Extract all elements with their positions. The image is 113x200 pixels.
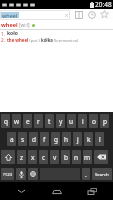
button[interactable]: h (62, 132, 71, 146)
button[interactable]: r (34, 114, 43, 128)
staticText: . (85, 170, 87, 179)
button[interactable]: g (51, 132, 60, 146)
button[interactable]: Search (92, 168, 112, 180)
staticText: v (53, 153, 57, 162)
button[interactable]: ?123 (1, 168, 14, 180)
staticText: d (32, 135, 36, 144)
button[interactable]: s (18, 132, 27, 146)
staticText: q (4, 117, 8, 126)
button[interactable]: Backspace (94, 150, 108, 164)
button[interactable]: Home (42, 182, 72, 200)
button[interactable]: n (72, 150, 81, 164)
staticText: a (10, 135, 14, 144)
button[interactable]: Dictionaries (72, 9, 85, 20)
staticText: u (69, 117, 74, 126)
button[interactable]: v (50, 150, 59, 164)
button[interactable]: Emoji (28, 168, 38, 180)
button[interactable]: i (78, 114, 87, 128)
staticText: h (64, 135, 69, 144)
staticText: [wi:l] (19, 22, 30, 29)
button[interactable]: b (61, 150, 70, 164)
staticText: x (31, 153, 35, 162)
staticText: w (14, 117, 20, 126)
button[interactable]: l (95, 132, 104, 146)
button[interactable]: 2. (0, 37, 113, 43)
staticText: j (77, 135, 79, 144)
button[interactable]: u (67, 114, 76, 128)
staticText: c (42, 153, 46, 162)
staticText: f (43, 135, 46, 144)
button[interactable]: Shift (1, 150, 15, 164)
staticText: i (82, 117, 84, 126)
staticText: 20:48 (95, 0, 112, 9)
button[interactable]: . (82, 168, 90, 180)
staticText: Search (95, 171, 109, 177)
staticText: e (26, 117, 30, 126)
button[interactable]: t (45, 114, 54, 128)
button[interactable]: wheel (0, 10, 70, 20)
button[interactable]: q (1, 114, 10, 128)
button[interactable]: Voice input (16, 168, 26, 180)
staticText: n (74, 153, 79, 162)
button[interactable]: wheel (0, 21, 113, 29)
button[interactable]: k (84, 132, 93, 146)
staticText: l (99, 135, 101, 144)
button[interactable]: x (28, 150, 37, 164)
button[interactable]: d (29, 132, 38, 146)
staticText: ?123 (3, 171, 13, 177)
button[interactable]: History (85, 9, 98, 20)
staticText: wheel (1, 21, 18, 29)
staticText: p (103, 117, 107, 126)
staticText: 2. (1, 37, 5, 43)
button[interactable]: w (12, 114, 21, 128)
staticText: g (54, 135, 58, 144)
staticText: t (48, 117, 51, 126)
staticText: the wheel (pot.) kółka (kierownica) (7, 37, 79, 43)
button[interactable]: Favourites (98, 9, 111, 20)
staticText: r (37, 117, 40, 126)
staticText: m (84, 153, 91, 162)
staticText: o (92, 117, 96, 126)
staticText: s (21, 135, 25, 144)
button[interactable]: c (39, 150, 48, 164)
staticText: k (87, 135, 91, 144)
button[interactable]: m (83, 150, 92, 164)
button[interactable]: Back (6, 182, 36, 200)
button[interactable]: y (56, 114, 65, 128)
staticText: wheel (2, 12, 18, 18)
staticText: y (59, 117, 63, 126)
button[interactable]: p (100, 114, 109, 128)
button[interactable]: Recents (77, 182, 107, 200)
button[interactable]: j (73, 132, 82, 146)
staticText: b (64, 153, 68, 162)
button[interactable]: f (40, 132, 49, 146)
button[interactable]: o (89, 114, 98, 128)
staticText: koło (7, 30, 18, 37)
button[interactable]: e (23, 114, 32, 128)
button[interactable]: z (17, 150, 26, 164)
button[interactable]: 1. (0, 30, 113, 37)
staticText: z (20, 153, 24, 162)
button[interactable]: a (7, 132, 16, 146)
staticText: 1. (1, 31, 5, 37)
